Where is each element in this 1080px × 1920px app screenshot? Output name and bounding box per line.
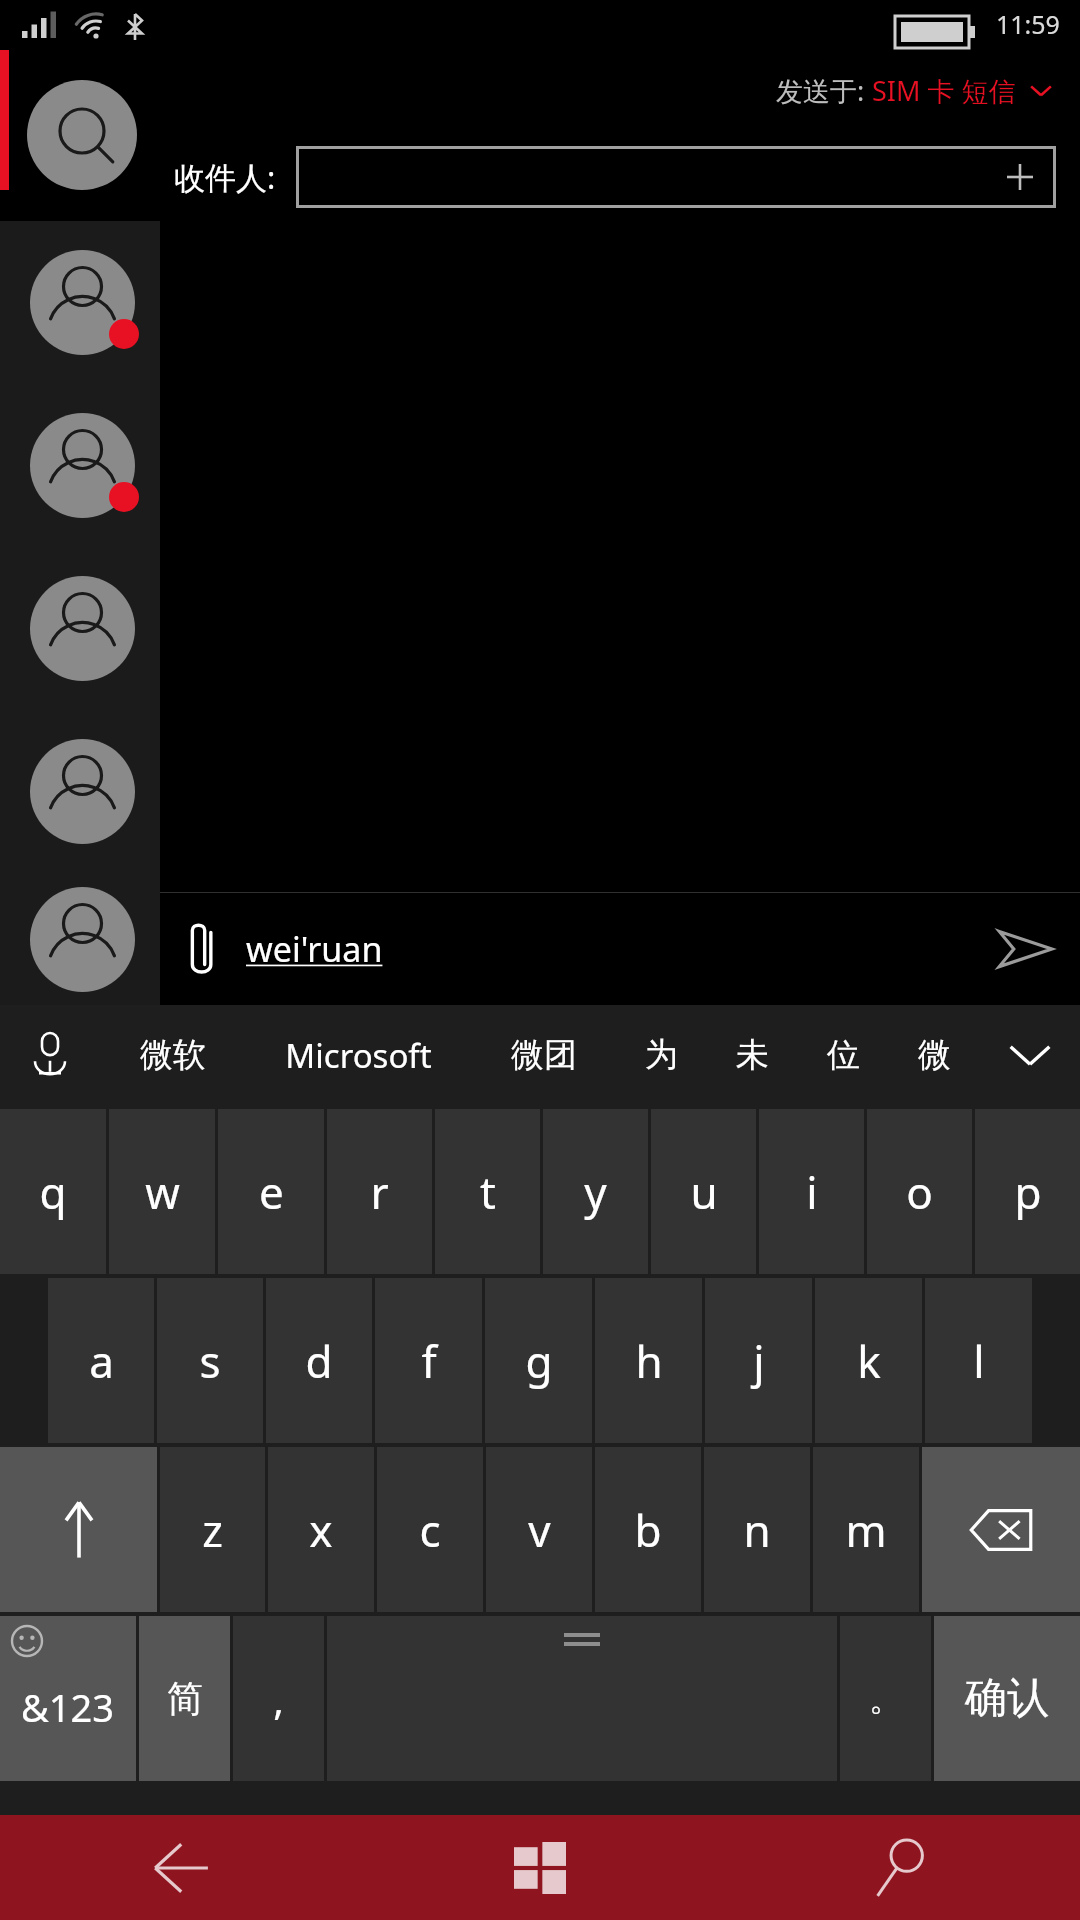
button[interactable]: e (218, 1109, 324, 1274)
button[interactable]: 位 (798, 1005, 889, 1105)
button[interactable]: Attach (160, 893, 246, 1005)
button[interactable]: Microsoft (246, 1005, 471, 1105)
button[interactable]: r (327, 1109, 432, 1274)
button[interactable]: 发送于: (160, 48, 1080, 132)
button[interactable]: y (543, 1109, 648, 1274)
button[interactable]: Space (327, 1616, 837, 1781)
staticText: l (973, 1331, 985, 1391)
button[interactable]: s (157, 1278, 263, 1443)
staticText: &123 (21, 1681, 115, 1733)
staticText: v (528, 1500, 551, 1560)
staticText: m (845, 1500, 887, 1560)
button[interactable]: 微团 (471, 1005, 616, 1105)
staticText: 为 (645, 1034, 678, 1076)
staticText: 位 (827, 1034, 860, 1076)
staticText: 发送于: (776, 72, 872, 109)
button[interactable]: Send (970, 893, 1080, 1005)
button[interactable]: q (0, 1109, 106, 1274)
button[interactable]: Search (720, 1815, 1080, 1920)
staticText: f (421, 1331, 437, 1391)
staticText: q (39, 1162, 67, 1222)
button[interactable]: a (48, 1278, 154, 1443)
button[interactable]: Contact (0, 547, 160, 710)
staticText: r (370, 1162, 389, 1222)
button[interactable]: x (268, 1447, 374, 1612)
button[interactable]: Shift (0, 1447, 157, 1612)
button[interactable]: Back (0, 1815, 360, 1920)
staticText: w (145, 1162, 180, 1222)
staticText: c (419, 1500, 441, 1560)
button[interactable]: c (377, 1447, 483, 1612)
button[interactable]: l (925, 1278, 1032, 1443)
button[interactable]: h (595, 1278, 702, 1443)
button[interactable]: Contact (0, 873, 160, 1005)
button[interactable]: 为 (616, 1005, 707, 1105)
staticText: 收件人: (174, 156, 276, 198)
button[interactable]: i (759, 1109, 864, 1274)
button[interactable]: Backspace (922, 1447, 1080, 1612)
staticText: e (259, 1162, 284, 1222)
staticText: 微团 (511, 1034, 577, 1076)
staticText: 微软 (140, 1034, 206, 1076)
button[interactable]: Voice input (0, 1005, 100, 1105)
button[interactable]: b (595, 1447, 701, 1612)
staticText: k (857, 1331, 881, 1391)
staticText: n (743, 1500, 771, 1560)
staticText: Microsoft (285, 1033, 432, 1078)
button[interactable]: , (233, 1616, 324, 1781)
button[interactable]: Search contacts (27, 80, 137, 190)
button[interactable]: Contact (0, 710, 160, 873)
button[interactable]: o (867, 1109, 972, 1274)
button[interactable]: f (375, 1278, 482, 1443)
button[interactable]: Collapse candidates (980, 1005, 1080, 1105)
staticText: i (806, 1162, 818, 1222)
staticText: 未 (736, 1034, 769, 1076)
staticText: a (89, 1331, 114, 1391)
staticText: y (584, 1162, 607, 1222)
staticText: p (1014, 1162, 1042, 1222)
staticText: h (635, 1331, 663, 1391)
staticText: j (753, 1331, 765, 1391)
button[interactable]: Start (360, 1815, 720, 1920)
button[interactable]: m (813, 1447, 919, 1612)
staticText: z (202, 1500, 223, 1560)
button[interactable]: t (435, 1109, 540, 1274)
staticText: wei'ruan (246, 926, 970, 972)
staticText: b (634, 1500, 662, 1560)
staticText: 确认 (965, 1672, 1049, 1725)
staticText: g (525, 1331, 553, 1391)
button[interactable]: Contact (0, 221, 160, 384)
staticText: x (309, 1500, 333, 1560)
button[interactable]: p (975, 1109, 1080, 1274)
button[interactable]: w (109, 1109, 215, 1274)
button[interactable]: 确认 (934, 1616, 1080, 1781)
button[interactable]: 。 (840, 1616, 931, 1781)
button[interactable]: d (266, 1278, 372, 1443)
staticText: s (199, 1331, 221, 1391)
button[interactable]: 未 (707, 1005, 798, 1105)
staticText: , (273, 1672, 284, 1726)
staticText: 11:59 (996, 7, 1060, 41)
staticText: 。 (869, 1677, 903, 1720)
button[interactable]: 微软 (100, 1005, 246, 1105)
button[interactable]: j (705, 1278, 812, 1443)
staticText: 微 (918, 1034, 951, 1076)
button[interactable]: Add recipient (299, 149, 1053, 205)
button[interactable]: 简 (139, 1616, 230, 1781)
staticText: o (906, 1162, 933, 1222)
staticText: 简 (167, 1676, 203, 1721)
button[interactable]: v (486, 1447, 592, 1612)
button[interactable]: &123 (0, 1616, 136, 1781)
button[interactable]: u (651, 1109, 756, 1274)
staticText: SIM 卡 短信 (872, 72, 1016, 109)
staticText: d (305, 1331, 333, 1391)
button[interactable]: 微 (889, 1005, 980, 1105)
button[interactable]: n (704, 1447, 810, 1612)
staticText: u (690, 1162, 718, 1222)
button[interactable]: k (815, 1278, 922, 1443)
other: Add recipient (1005, 162, 1035, 192)
button[interactable]: Contact (0, 384, 160, 547)
button[interactable]: z (160, 1447, 265, 1612)
button[interactable]: g (485, 1278, 592, 1443)
staticText: t (480, 1162, 496, 1222)
